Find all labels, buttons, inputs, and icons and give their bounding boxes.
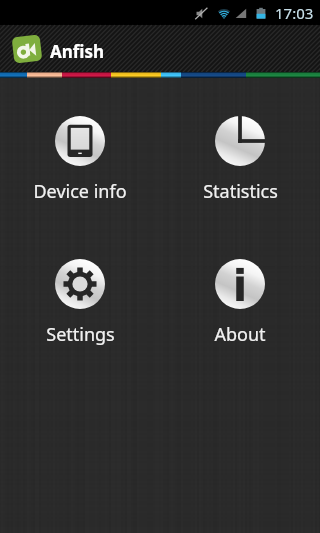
button[interactable]: Statistics [160,116,320,204]
button[interactable]: Settings [0,259,160,347]
button[interactable]: About [160,259,320,347]
staticText: Anfish [50,40,105,63]
staticText: Settings [46,322,115,347]
staticText: Statistics [203,179,278,204]
staticText: About [214,322,266,347]
button[interactable]: Device info [0,116,160,204]
staticText: 17:03 [275,3,314,23]
staticText: Device info [33,179,127,204]
